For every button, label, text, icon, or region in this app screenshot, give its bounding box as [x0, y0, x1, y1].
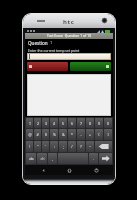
button[interactable]: !: [26, 141, 33, 152]
staticText: ): [107, 132, 109, 137]
staticText: 8: [89, 121, 91, 126]
button[interactable]: Previous question: [27, 62, 68, 71]
button[interactable]: Back: [34, 165, 52, 175]
button[interactable]: 0: [104, 118, 112, 128]
staticText: ,: [52, 156, 53, 161]
staticText: ": [37, 144, 39, 149]
staticText: =\<: [40, 157, 45, 161]
button[interactable]: 2: [34, 118, 41, 128]
staticText: ~: [89, 144, 91, 149]
staticText: 0: [107, 121, 109, 126]
staticText: -: [80, 132, 82, 137]
button[interactable]: 9: [95, 118, 103, 128]
button[interactable]: 7: [77, 118, 85, 128]
staticText: ;: [63, 144, 64, 149]
button[interactable]: 6: [68, 118, 76, 128]
button[interactable]: &: [59, 129, 67, 140]
button[interactable]: Space: [58, 153, 88, 164]
staticText: 6: [71, 121, 73, 126]
button[interactable]: ": [34, 141, 41, 152]
button[interactable]: ): [104, 129, 112, 140]
button[interactable]: (: [95, 129, 103, 140]
button[interactable]: Home: [60, 165, 78, 175]
button[interactable]: ~: [86, 141, 94, 152]
staticText: ?: [80, 144, 82, 149]
button[interactable]: #: [34, 129, 41, 140]
button[interactable]: $: [42, 129, 49, 140]
staticText: 4: [53, 121, 55, 126]
staticText: ': [45, 144, 46, 149]
button[interactable]: 8: [86, 118, 94, 128]
button[interactable]: %: [50, 129, 58, 140]
staticText: .: [93, 156, 94, 161]
staticText: (: [98, 132, 100, 137]
button[interactable]: Recent apps: [87, 165, 105, 175]
button[interactable]: ?: [77, 141, 85, 152]
button[interactable]: Next question: [70, 62, 111, 71]
button[interactable]: ': [42, 141, 49, 152]
staticText: 2: [37, 121, 39, 126]
staticText: &: [62, 132, 65, 137]
button[interactable]: 3: [42, 118, 49, 128]
button[interactable]: :: [50, 141, 58, 152]
staticText: %: [53, 132, 56, 137]
staticText: 5: [62, 121, 64, 126]
button[interactable]: abc: [26, 153, 36, 164]
staticText: Question: [28, 40, 48, 46]
button[interactable]: 5: [59, 118, 67, 128]
button[interactable]: Enter: [99, 153, 112, 164]
button[interactable]: Test Exam Question 1 of 10: [25, 33, 113, 39]
staticText: Enter the current temp set point: [28, 48, 80, 53]
staticText: #: [36, 132, 39, 137]
button[interactable]: *: [68, 129, 76, 140]
button[interactable]: =\<: [37, 153, 47, 164]
staticText: +: [89, 132, 91, 137]
button[interactable]: +: [86, 129, 94, 140]
button[interactable]: -: [77, 129, 85, 140]
button[interactable]: 1: [26, 118, 33, 128]
staticText: Test Exam Question 1 of 10: [47, 34, 92, 38]
staticText: 9: [98, 121, 100, 126]
button[interactable]: ;: [59, 141, 67, 152]
button[interactable]: [28, 54, 110, 59]
staticText: !: [29, 144, 30, 149]
staticText: 3: [45, 121, 47, 126]
staticText: 7: [80, 121, 82, 126]
button[interactable]: /: [68, 141, 76, 152]
staticText: @: [28, 132, 32, 137]
staticText: $: [45, 132, 47, 137]
staticText: /: [71, 144, 73, 149]
button[interactable]: .: [89, 153, 98, 164]
staticText: 1: [29, 121, 31, 126]
staticText: :: [54, 144, 55, 149]
button[interactable]: @: [26, 129, 33, 140]
button[interactable]: ,: [48, 153, 57, 164]
staticText: 1: [50, 40, 53, 46]
button[interactable]: 4: [50, 118, 58, 128]
staticText: htc: [63, 18, 75, 26]
staticText: abc: [29, 157, 34, 161]
staticText: *: [71, 132, 73, 137]
button[interactable]: Backspace: [95, 141, 112, 152]
